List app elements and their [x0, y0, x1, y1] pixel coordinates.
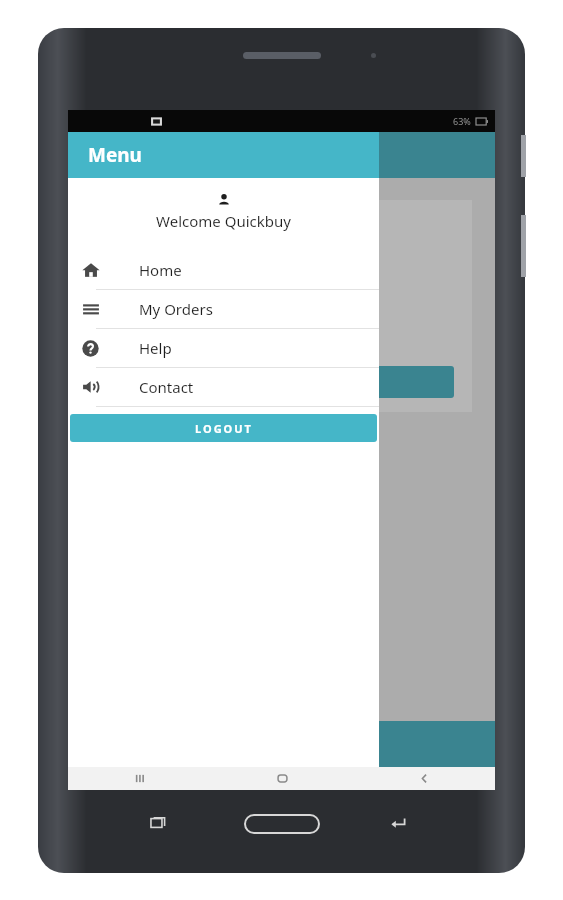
staticText: Menu [88, 142, 142, 168]
button[interactable]: Help [68, 329, 379, 367]
staticText: for items in the catalogue or any other [110, 292, 309, 307]
button[interactable]: Contact [68, 368, 379, 406]
staticText: Use the menu to browse products, search [110, 272, 325, 287]
staticText: LOGOUT [195, 421, 253, 436]
staticText: Contact [139, 377, 194, 397]
button[interactable]: Back [387, 812, 409, 834]
staticText: Welcome to Quickbuy shopping experience. [110, 252, 337, 267]
staticText: My Orders [139, 299, 213, 319]
button[interactable]: Recents [147, 812, 169, 834]
staticText: 63% [453, 115, 471, 127]
staticText: Home [139, 260, 182, 280]
staticText: Welcome Quickbuy [156, 211, 291, 231]
staticText: feature such as Order Status, [110, 312, 261, 327]
button[interactable]: LOGOUT [70, 414, 377, 442]
staticText: Help [139, 338, 172, 358]
button[interactable]: Back [353, 767, 495, 790]
button[interactable]: Home [211, 767, 353, 790]
button[interactable]: Recent apps [68, 767, 211, 790]
button[interactable]: My Orders [68, 290, 379, 328]
button[interactable] [110, 366, 454, 398]
button[interactable]: Home [68, 251, 379, 289]
button[interactable]: Home [243, 813, 321, 835]
